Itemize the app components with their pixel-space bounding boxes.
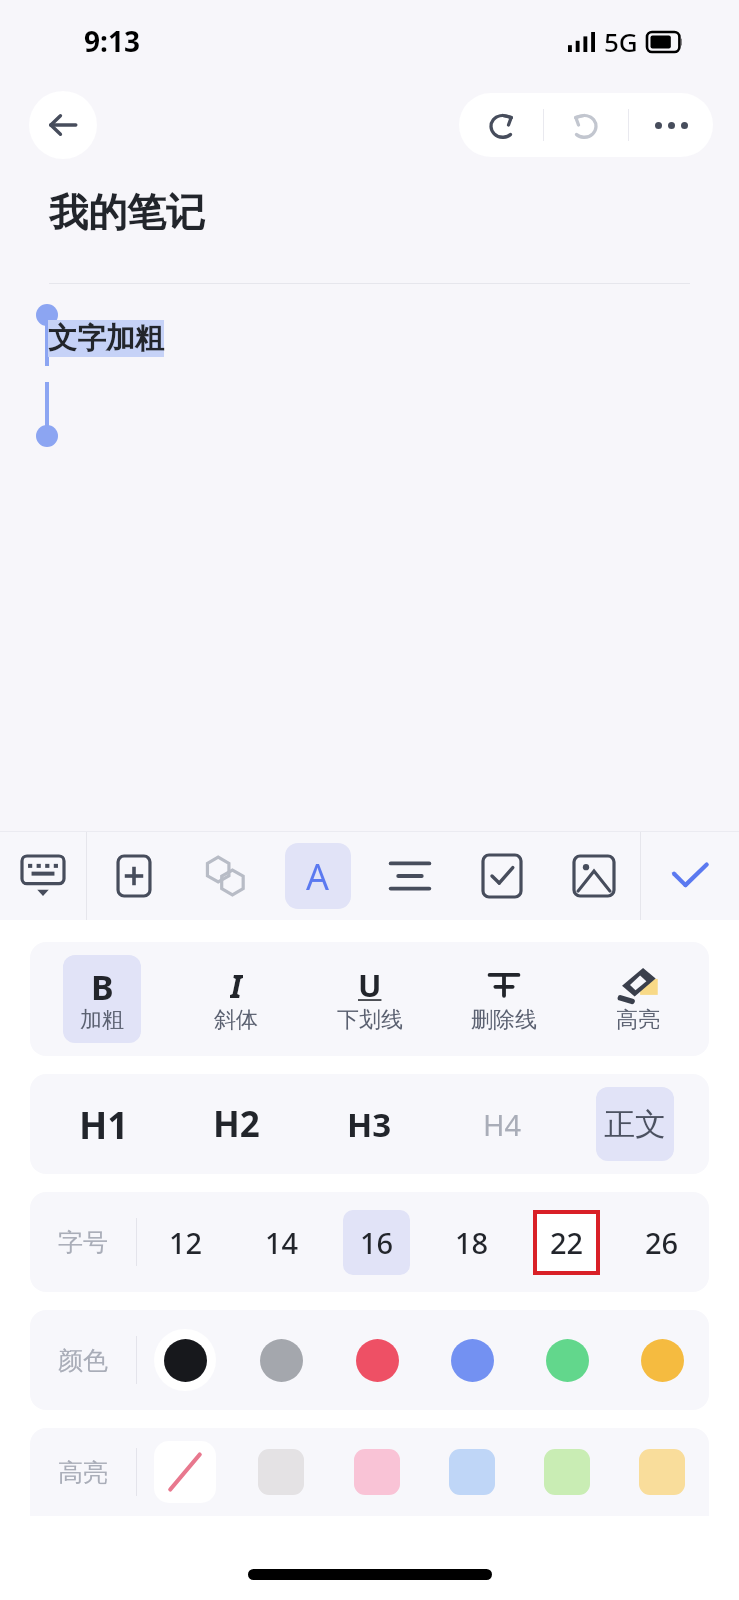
staticText: 我的笔记 bbox=[49, 188, 205, 237]
button[interactable]: Text color bbox=[536, 1329, 598, 1391]
button[interactable]: Highlight color bbox=[639, 1449, 685, 1495]
button[interactable]: Highlight color bbox=[544, 1449, 590, 1495]
staticText: U bbox=[358, 964, 382, 1006]
staticText: A bbox=[306, 852, 330, 901]
staticText: 9:13 bbox=[84, 22, 140, 60]
staticText: 高亮 bbox=[616, 1006, 660, 1034]
button[interactable]: H3 bbox=[330, 1087, 408, 1161]
button[interactable]: Done bbox=[641, 832, 739, 920]
staticText: 14 bbox=[265, 1223, 299, 1262]
button[interactable]: B bbox=[63, 955, 141, 1043]
staticText: H3 bbox=[347, 1102, 392, 1147]
button[interactable]: Text color bbox=[154, 1329, 216, 1391]
button[interactable]: Undo bbox=[459, 93, 543, 157]
button[interactable]: Text color bbox=[346, 1329, 408, 1391]
button[interactable]: 高亮 bbox=[599, 955, 677, 1043]
button[interactable]: Image bbox=[548, 832, 640, 920]
button[interactable]: More options bbox=[629, 93, 713, 157]
button[interactable]: Redo bbox=[544, 93, 628, 157]
staticText: H2 bbox=[213, 1100, 260, 1148]
button[interactable]: 16 bbox=[343, 1210, 410, 1275]
staticText: H4 bbox=[483, 1105, 522, 1144]
button[interactable]: 18 bbox=[438, 1210, 505, 1275]
button[interactable]: Insert bbox=[87, 832, 180, 920]
staticText: 16 bbox=[360, 1223, 394, 1262]
staticText: 12 bbox=[169, 1223, 203, 1262]
button[interactable]: Highlight color bbox=[354, 1449, 400, 1495]
button[interactable]: H4 bbox=[463, 1087, 541, 1161]
staticText: 文字加粗 bbox=[48, 320, 164, 357]
staticText: 22 bbox=[550, 1223, 584, 1262]
button[interactable]: Checklist bbox=[456, 832, 548, 920]
staticText: 斜体 bbox=[214, 1006, 258, 1034]
button[interactable]: Highlight color bbox=[449, 1449, 495, 1495]
button[interactable]: 12 bbox=[152, 1210, 219, 1275]
button[interactable]: Hide keyboard bbox=[0, 832, 86, 920]
staticText: B bbox=[91, 964, 114, 1006]
button[interactable]: Text color bbox=[631, 1329, 693, 1391]
staticText: I bbox=[230, 964, 243, 1006]
button[interactable]: 14 bbox=[248, 1210, 315, 1275]
button[interactable]: 删除线 bbox=[465, 955, 543, 1043]
staticText: 下划线 bbox=[337, 1006, 403, 1034]
staticText: 18 bbox=[455, 1223, 489, 1262]
staticText: 5G bbox=[604, 24, 638, 59]
button[interactable]: H2 bbox=[197, 1087, 275, 1161]
button[interactable]: U bbox=[331, 955, 409, 1043]
button[interactable]: No highlight bbox=[154, 1441, 216, 1503]
button[interactable]: 26 bbox=[628, 1210, 695, 1275]
button[interactable]: Align bbox=[364, 832, 456, 920]
staticText: 高亮 bbox=[58, 1457, 108, 1488]
staticText: 正文 bbox=[604, 1105, 666, 1144]
staticText: 26 bbox=[645, 1223, 679, 1262]
button[interactable]: Back bbox=[29, 91, 97, 159]
button[interactable]: H1 bbox=[65, 1087, 143, 1161]
button[interactable]: I bbox=[197, 955, 275, 1043]
staticText: 删除线 bbox=[471, 1006, 537, 1034]
button[interactable]: 正文 bbox=[596, 1087, 674, 1161]
button[interactable]: 22 bbox=[533, 1210, 600, 1275]
button[interactable]: Text format bbox=[272, 832, 364, 920]
staticText: 字号 bbox=[58, 1227, 108, 1258]
button[interactable]: Highlight color bbox=[258, 1449, 304, 1495]
button[interactable]: Link bbox=[180, 832, 272, 920]
staticText: 颜色 bbox=[58, 1345, 108, 1376]
button[interactable]: Text color bbox=[250, 1329, 312, 1391]
button[interactable]: Text color bbox=[441, 1329, 503, 1391]
staticText: 加粗 bbox=[80, 1006, 124, 1034]
staticText: H1 bbox=[79, 1099, 129, 1149]
